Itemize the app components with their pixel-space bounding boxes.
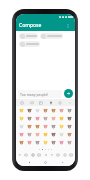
button[interactable]: Emoji (42, 107, 49, 114)
button[interactable]: Emoji category 1 (18, 99, 25, 106)
button[interactable]: Emoji (50, 115, 57, 122)
button[interactable]: Emoji category 3 (37, 99, 44, 106)
button[interactable]: Emoji (50, 131, 57, 138)
button[interactable]: Emoji (26, 139, 33, 146)
button[interactable]: Emoji category 4 (47, 99, 54, 106)
button[interactable]: Emoji (58, 123, 65, 130)
button[interactable]: Emoji (58, 115, 65, 122)
button[interactable]: Keyboard action 8 (62, 152, 68, 158)
button[interactable]: Emoji (18, 139, 25, 146)
button[interactable]: More options (64, 22, 72, 30)
button[interactable]: Emoji (58, 139, 65, 146)
button[interactable] (19, 41, 40, 47)
button[interactable]: Emoji (50, 139, 57, 146)
button[interactable]: Keyboard action 6 (49, 152, 55, 158)
button[interactable] (19, 33, 38, 39)
button[interactable]: Emoji (34, 139, 41, 146)
staticText: Compose (19, 22, 42, 29)
button[interactable]: Emoji (34, 123, 41, 130)
button[interactable]: Keyboard action 4 (36, 152, 42, 158)
button[interactable]: Emoji (34, 131, 41, 138)
button[interactable]: Emoji (42, 123, 49, 130)
button[interactable]: Emoji (26, 123, 33, 130)
button[interactable]: Keyboard action 3 (30, 152, 36, 158)
button[interactable]: Back (26, 159, 33, 166)
button[interactable]: Home (42, 159, 49, 166)
button[interactable]: Emoji (18, 123, 25, 130)
button[interactable]: Emoji (26, 115, 33, 122)
button[interactable]: Emoji (66, 115, 73, 122)
button[interactable]: Emoji (66, 139, 73, 146)
button[interactable]: Keyboard action 5 (43, 152, 49, 158)
button[interactable]: Emoji (58, 107, 65, 114)
button[interactable]: Emoji (66, 131, 73, 138)
button[interactable]: Keyboard action 1 (17, 152, 23, 158)
button[interactable]: Emoji category 5 (56, 99, 63, 106)
button[interactable]: Emoji (58, 131, 65, 138)
button[interactable]: Too many people! (18, 90, 62, 98)
button[interactable]: Emoji (18, 115, 25, 122)
button[interactable]: Keyboard action 7 (55, 152, 61, 158)
button[interactable]: Emoji category 2 (28, 99, 35, 106)
button[interactable]: Emoji (26, 131, 33, 138)
button[interactable]: Emoji (26, 107, 33, 114)
button[interactable]: Recent apps (59, 159, 66, 166)
button[interactable]: Send (64, 89, 73, 98)
button[interactable]: Emoji (50, 123, 57, 130)
button[interactable]: Emoji (18, 107, 25, 114)
button[interactable] (40, 33, 63, 39)
button[interactable]: Emoji (50, 107, 57, 114)
button[interactable]: Emoji (42, 131, 49, 138)
button[interactable]: Emoji (66, 123, 73, 130)
button[interactable]: Emoji (42, 115, 49, 122)
button[interactable]: Emoji category 6 (66, 99, 73, 106)
staticText: Too many people! (20, 92, 49, 97)
button[interactable]: Emoji (42, 139, 49, 146)
button[interactable]: Emoji (34, 107, 41, 114)
button[interactable]: Emoji (66, 107, 73, 114)
button[interactable]: Emoji (18, 131, 25, 138)
button[interactable]: Keyboard action 9 (68, 152, 74, 158)
button[interactable]: Keyboard action 2 (23, 152, 29, 158)
button[interactable]: Emoji (34, 115, 41, 122)
